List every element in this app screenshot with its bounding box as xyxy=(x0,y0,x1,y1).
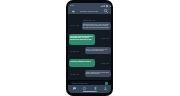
staticText: 9:48 AM xyxy=(71,73,79,76)
staticText: 9:46 AM xyxy=(101,62,109,65)
button[interactable]: Calls xyxy=(79,85,89,91)
staticText: Great, catching up on everything right a… xyxy=(86,71,110,75)
staticText: 9:45 AM xyxy=(71,50,79,53)
staticText: Morning! Just finished reviewing everyth… xyxy=(70,35,94,41)
button[interactable]: Type a message xyxy=(70,81,109,85)
staticText: 9:41 AM xyxy=(71,24,79,27)
button[interactable]: Good morning, Alex — are you ready for t… xyxy=(82,22,111,30)
staticText: 9:43 AM xyxy=(101,37,109,40)
staticText: Nice — I also fixed the list row spacing… xyxy=(86,48,110,52)
button[interactable]: Awesome, shipping it today 👍 xyxy=(69,59,95,67)
staticText: Design Team Sync xyxy=(80,10,99,13)
button[interactable]: Send xyxy=(105,82,108,85)
button[interactable]: Nice — I also fixed the list row spacing… xyxy=(85,47,111,54)
button[interactable]: Back xyxy=(70,8,76,14)
staticText: Awesome, shipping it today 👍 xyxy=(70,60,92,62)
button[interactable]: Chats xyxy=(69,85,79,91)
button[interactable]: Morning! Just finished reviewing everyth… xyxy=(69,34,95,45)
staticText: February 26 xyxy=(83,19,96,22)
staticText: Type a message xyxy=(72,82,88,85)
staticText: Good morning, Alex — are you ready for t… xyxy=(83,23,110,29)
staticText: 9:41 xyxy=(70,4,75,7)
button[interactable]: Search xyxy=(103,8,109,14)
button[interactable]: Contacts xyxy=(90,85,100,91)
button[interactable]: Great, catching up on everything right a… xyxy=(85,70,111,77)
button[interactable]: Profile xyxy=(100,85,110,91)
